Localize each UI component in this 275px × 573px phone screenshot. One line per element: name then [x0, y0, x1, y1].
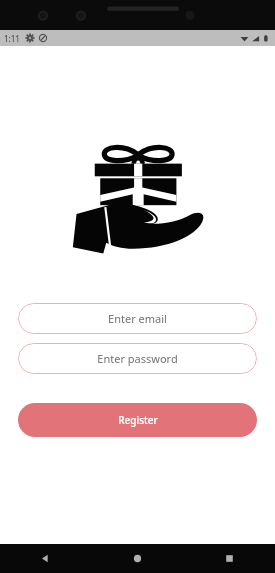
button[interactable]: Enter password: [18, 343, 257, 374]
button[interactable]: Back: [0, 544, 91, 573]
other: Gift in hand logo: [69, 143, 206, 254]
staticText: Enter email: [108, 311, 167, 326]
staticText: Enter password: [97, 351, 178, 366]
staticText: 1:11: [4, 33, 20, 44]
button[interactable]: Register: [18, 403, 257, 437]
button[interactable]: Recent apps: [183, 544, 275, 573]
button[interactable]: Enter email: [18, 303, 257, 334]
staticText: Register: [118, 413, 158, 427]
button[interactable]: Home: [91, 544, 183, 573]
